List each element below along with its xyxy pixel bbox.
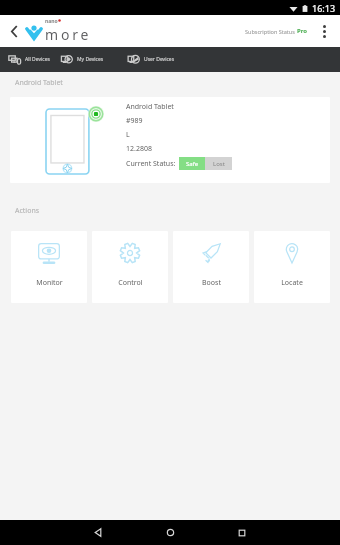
staticText: Monitor [36, 278, 63, 288]
button[interactable]: My Devices [60, 47, 104, 72]
staticText: Current Status: [126, 159, 176, 169]
button[interactable]: User Devices [127, 47, 175, 72]
staticText: L [126, 130, 130, 140]
button[interactable]: Home [150, 520, 190, 545]
staticText: Boost [202, 278, 221, 288]
button[interactable]: All Devices [8, 47, 50, 72]
staticText: nano [45, 18, 58, 25]
staticText: 12.2808 [126, 144, 152, 154]
button[interactable]: Safe [179, 157, 205, 170]
button[interactable]: Boost [173, 231, 249, 303]
staticText: Subscription Status [245, 28, 297, 35]
staticText: more [45, 25, 92, 44]
staticText: Android Tablet [15, 78, 63, 88]
button[interactable]: Locate [254, 231, 330, 303]
button[interactable]: Back [78, 520, 118, 545]
staticText: Actions [15, 206, 40, 216]
staticText: 16:13 [312, 2, 336, 14]
button[interactable]: Monitor [11, 231, 87, 303]
staticText: #989 [126, 116, 143, 126]
staticText: Android Tablet [126, 102, 174, 112]
staticText: Lost [213, 160, 225, 168]
staticText: My Devices [77, 56, 104, 63]
button[interactable]: More options [317, 17, 331, 45]
staticText: Pro [297, 27, 308, 35]
button[interactable]: Recent apps [222, 520, 262, 545]
button[interactable]: Control [92, 231, 168, 303]
staticText: Control [118, 278, 143, 288]
staticText: User Devices [144, 56, 175, 63]
button[interactable]: Back [6, 17, 22, 45]
button[interactable]: Android Tablet [10, 97, 330, 183]
staticText: All Devices [25, 56, 50, 63]
button[interactable]: Lost [205, 157, 232, 170]
staticText: Locate [281, 278, 303, 288]
staticText: Safe [186, 160, 199, 168]
